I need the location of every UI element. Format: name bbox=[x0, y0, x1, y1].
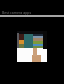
staticText: Best camera apps bbox=[2, 10, 32, 15]
button[interactable]: Photo bbox=[17, 31, 47, 62]
